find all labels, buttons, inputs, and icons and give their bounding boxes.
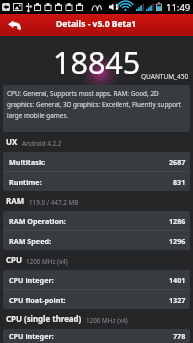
staticText: 1200 MHz (x4) [86, 316, 128, 325]
staticText: 11:49 [166, 1, 191, 14]
staticText: 2687 [169, 157, 186, 167]
staticText: UX [6, 137, 18, 148]
button[interactable]: CPU integer: [3, 270, 190, 289]
staticText: Details - v5.0 Beta1 [56, 18, 137, 30]
button[interactable]: Runtime: [3, 172, 190, 191]
staticText: CPU (single thread) [6, 314, 82, 325]
staticText: CPU integer: [9, 275, 54, 285]
staticText: CPU integer: [9, 331, 54, 341]
staticText: 831 [173, 177, 186, 187]
staticText: CPU float-point: [9, 295, 66, 305]
staticText: 1286 [169, 216, 186, 226]
staticText: 778 [173, 331, 186, 341]
button[interactable]: CPU float-point: [3, 290, 190, 309]
staticText: RAM [6, 196, 25, 207]
staticText: 1296 [169, 236, 186, 246]
button[interactable]: Multitask: [3, 152, 190, 171]
staticText: Android 4.2.2 [22, 139, 62, 148]
staticText: RAM Speed: [9, 236, 51, 246]
button[interactable]: CPU integer: [3, 329, 190, 343]
button[interactable]: RAM Operation: [3, 211, 190, 230]
staticText: RAM Operation: [9, 216, 66, 226]
staticText: CPU [6, 255, 22, 266]
button[interactable]: Back [0, 14, 28, 36]
staticText: 119.0 / 447.2 MB [29, 198, 79, 207]
staticText: QUANTUM_450 [141, 72, 189, 81]
staticText: CPU: General, Supports most apps. RAM: G… [7, 89, 182, 120]
staticText: 1200 MHz (x4) [26, 257, 68, 266]
staticText: 18845 [53, 41, 141, 83]
staticText: Multitask: [9, 157, 46, 167]
staticText: 1327 [169, 295, 186, 305]
staticText: Runtime: [9, 177, 42, 187]
button[interactable]: RAM Speed: [3, 231, 190, 250]
staticText: 1401 [169, 275, 186, 285]
